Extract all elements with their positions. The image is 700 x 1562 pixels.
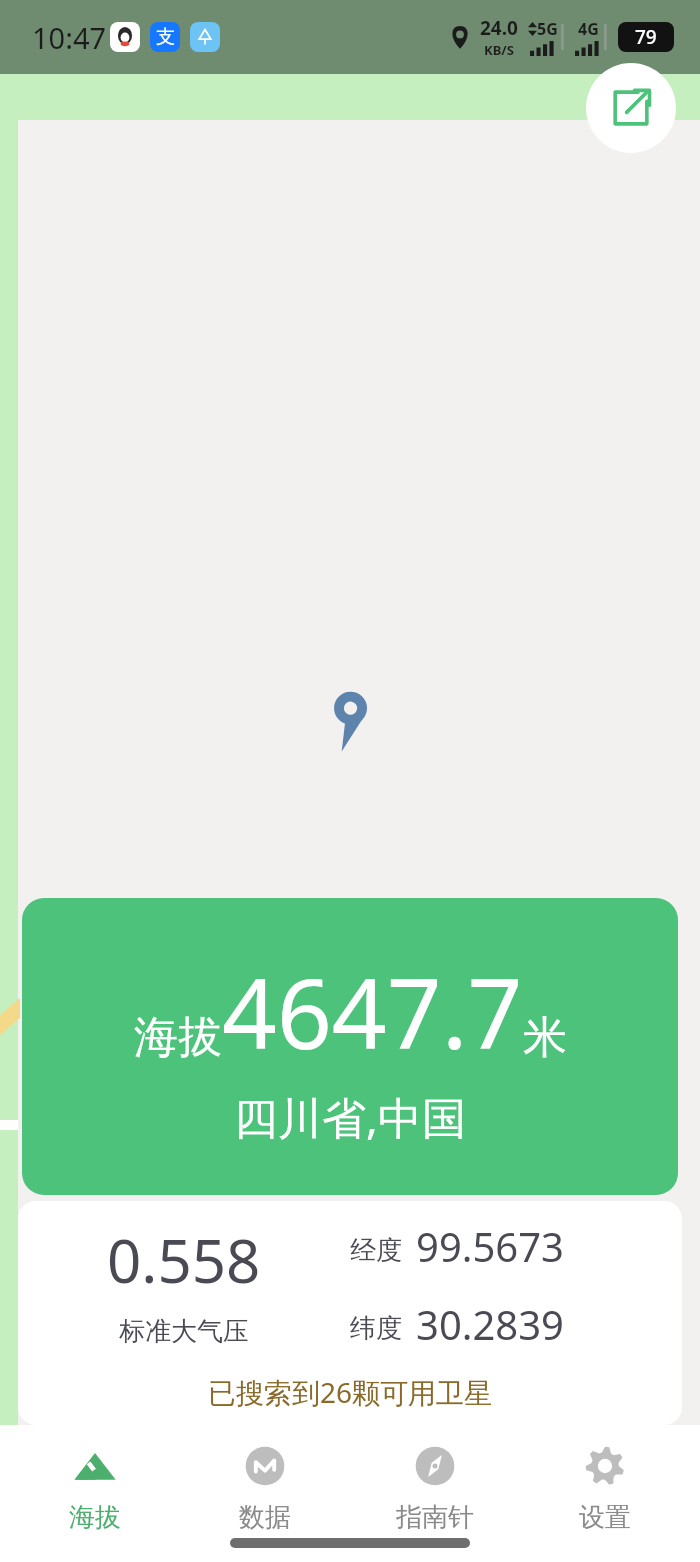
staticText: 海拔 xyxy=(134,1010,222,1065)
button[interactable]: 数据 xyxy=(190,1425,340,1534)
staticText: 米 xyxy=(523,1010,567,1065)
button[interactable]: 指南针 xyxy=(360,1425,510,1534)
staticText: 已搜索到26颗可用卫星 xyxy=(18,1373,682,1411)
staticText: 0.558 xyxy=(107,1219,261,1301)
staticText: 设置 xyxy=(579,1501,631,1534)
button[interactable]: 0.558 xyxy=(18,1201,682,1425)
staticText: 4G xyxy=(578,18,599,40)
staticText: 指南针 xyxy=(396,1501,474,1534)
staticText: 支 xyxy=(156,25,175,49)
staticText: 四川省,中国 xyxy=(234,1087,466,1147)
staticText: 经度 xyxy=(350,1234,402,1267)
staticText: 4647.7 xyxy=(222,946,523,1077)
staticText: KB/S xyxy=(484,41,514,59)
staticText: 10:47 xyxy=(32,18,107,57)
button[interactable]: 海拔 xyxy=(22,898,678,1195)
staticText: 79 xyxy=(635,24,657,50)
staticText: 标准大气压 xyxy=(119,1315,249,1348)
staticText: 5G xyxy=(537,18,558,40)
button[interactable]: 设置 xyxy=(530,1425,680,1534)
staticText: 纬度 xyxy=(350,1312,402,1345)
staticText: 99.5673 xyxy=(416,1219,564,1273)
button[interactable]: Open in new xyxy=(586,63,676,153)
staticText: 数据 xyxy=(239,1501,291,1534)
button[interactable]: 海拔 xyxy=(20,1425,170,1534)
staticText: 24.0 xyxy=(480,15,518,41)
staticText: 30.2839 xyxy=(416,1297,564,1351)
staticText: 海拔 xyxy=(69,1501,121,1534)
